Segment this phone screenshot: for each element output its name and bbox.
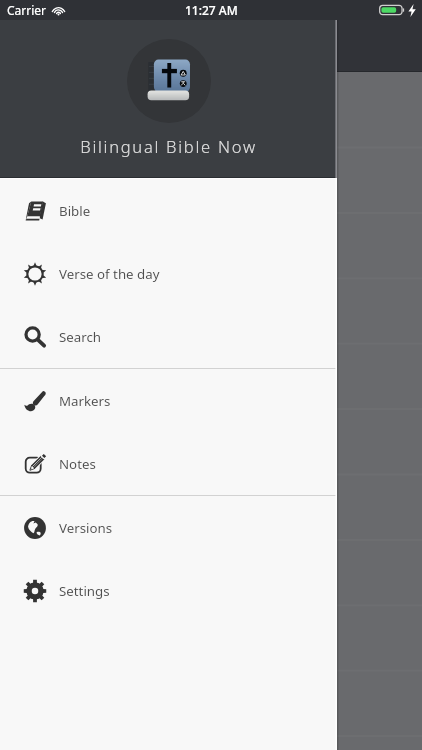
staticText: Bible <box>59 202 91 220</box>
staticText: Markers <box>59 392 111 410</box>
button[interactable]: Versions <box>0 496 337 559</box>
staticText: 11:27 AM <box>185 2 238 18</box>
button[interactable]: Markers <box>0 369 337 432</box>
staticText: Search <box>59 328 102 346</box>
staticText: Notes <box>59 455 96 473</box>
button[interactable]: Verse of the day <box>0 242 337 305</box>
button[interactable]: Bible <box>0 179 337 242</box>
button[interactable]: Notes <box>0 432 337 495</box>
staticText: Versions <box>59 519 113 537</box>
button[interactable]: Search <box>0 305 337 368</box>
button[interactable]: Settings <box>0 559 337 622</box>
staticText: Verse of the day <box>59 265 160 283</box>
staticText: Carrier <box>7 2 47 18</box>
staticText: Settings <box>59 582 110 600</box>
staticText: Bilingual Bible Now <box>80 135 257 157</box>
